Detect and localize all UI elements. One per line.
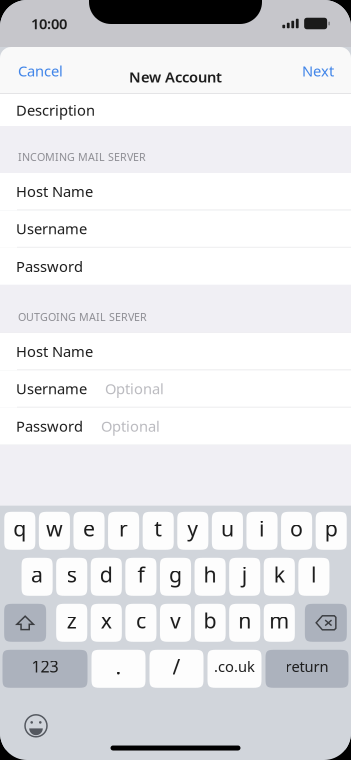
button[interactable]: p	[316, 512, 347, 550]
button[interactable]: Password	[0, 248, 351, 285]
button[interactable]: g	[160, 558, 191, 596]
staticText: u	[221, 514, 234, 542]
button[interactable]: f	[125, 558, 156, 596]
staticText: Username	[16, 219, 87, 238]
button[interactable]: 123	[2, 650, 87, 688]
staticText: Description	[16, 100, 95, 120]
staticText: v	[170, 606, 181, 634]
button[interactable]: s	[56, 558, 87, 596]
staticText: h	[204, 560, 217, 588]
staticText: n	[238, 606, 251, 634]
button[interactable]: j	[229, 558, 260, 596]
staticText: f	[137, 560, 144, 588]
button[interactable]: n	[229, 604, 260, 642]
staticText: b	[204, 606, 217, 634]
staticText: a	[31, 560, 43, 588]
button[interactable]: y	[177, 512, 208, 550]
staticText: y	[187, 514, 198, 542]
staticText: c	[136, 606, 146, 634]
staticText: return	[285, 657, 328, 676]
staticText: r	[119, 514, 128, 542]
button[interactable]: return	[265, 650, 348, 688]
button[interactable]: k	[264, 558, 295, 596]
staticText: m	[269, 606, 289, 634]
button[interactable]: v	[160, 604, 191, 642]
button[interactable]: Password	[0, 407, 351, 445]
button[interactable]: Username	[0, 210, 351, 248]
staticText: Host Name	[16, 182, 93, 201]
button[interactable]: b	[195, 604, 226, 642]
button[interactable]: Next	[290, 52, 334, 89]
staticText: 10:00	[31, 14, 67, 33]
staticText: Password	[16, 256, 83, 276]
staticText: d	[100, 560, 113, 588]
button[interactable]: o	[281, 512, 312, 550]
staticText: Username	[16, 379, 87, 398]
button[interactable]: q	[4, 512, 35, 550]
staticText: Cancel	[18, 61, 63, 80]
staticText: w	[46, 514, 63, 542]
staticText: .co.uk	[214, 657, 255, 676]
button[interactable]: .co.uk	[207, 650, 261, 688]
button[interactable]: c	[125, 604, 156, 642]
button[interactable]: Delete	[305, 604, 347, 642]
button[interactable]: w	[39, 512, 70, 550]
button[interactable]: u	[212, 512, 243, 550]
button[interactable]: x	[91, 604, 122, 642]
button[interactable]: Description	[0, 94, 351, 126]
staticText: p	[325, 514, 338, 542]
staticText: x	[101, 606, 112, 634]
button[interactable]: a	[22, 558, 53, 596]
staticText: l	[311, 560, 317, 588]
staticText: q	[13, 514, 26, 542]
staticText: o	[290, 514, 303, 542]
staticText: Next	[302, 61, 334, 80]
staticText: INCOMING MAIL SERVER	[18, 150, 146, 164]
staticText: /	[172, 652, 180, 680]
button[interactable]: Emoji keyboard	[19, 709, 53, 743]
staticText: 123	[31, 656, 58, 677]
button[interactable]: Host Name	[0, 173, 351, 210]
staticText: Optional	[101, 416, 160, 436]
button[interactable]: h	[195, 558, 226, 596]
button[interactable]: Cancel	[18, 52, 75, 89]
button[interactable]: Host Name	[0, 333, 351, 370]
staticText: .	[115, 652, 121, 680]
staticText: j	[242, 560, 248, 588]
button[interactable]: /	[149, 650, 203, 688]
button[interactable]: t	[143, 512, 174, 550]
staticText: k	[274, 560, 285, 588]
button[interactable]: z	[56, 604, 87, 642]
staticText: e	[83, 514, 95, 542]
staticText: OUTGOING MAIL SERVER	[18, 310, 147, 324]
button[interactable]: i	[246, 512, 277, 550]
staticText: New Account	[129, 67, 222, 86]
button[interactable]: Username	[0, 370, 351, 407]
staticText: i	[259, 514, 265, 542]
staticText: Optional	[105, 379, 164, 398]
staticText: g	[169, 560, 182, 588]
button[interactable]: d	[91, 558, 122, 596]
staticText: z	[67, 606, 77, 634]
staticText: t	[154, 514, 162, 542]
button[interactable]: .	[91, 650, 145, 688]
staticText: Host Name	[16, 341, 93, 361]
button[interactable]: m	[264, 604, 295, 642]
button[interactable]: l	[298, 558, 329, 596]
staticText: s	[67, 560, 77, 588]
button[interactable]: Shift	[4, 604, 46, 642]
staticText: Password	[16, 416, 83, 436]
button[interactable]: e	[73, 512, 105, 550]
button[interactable]: r	[108, 512, 139, 550]
